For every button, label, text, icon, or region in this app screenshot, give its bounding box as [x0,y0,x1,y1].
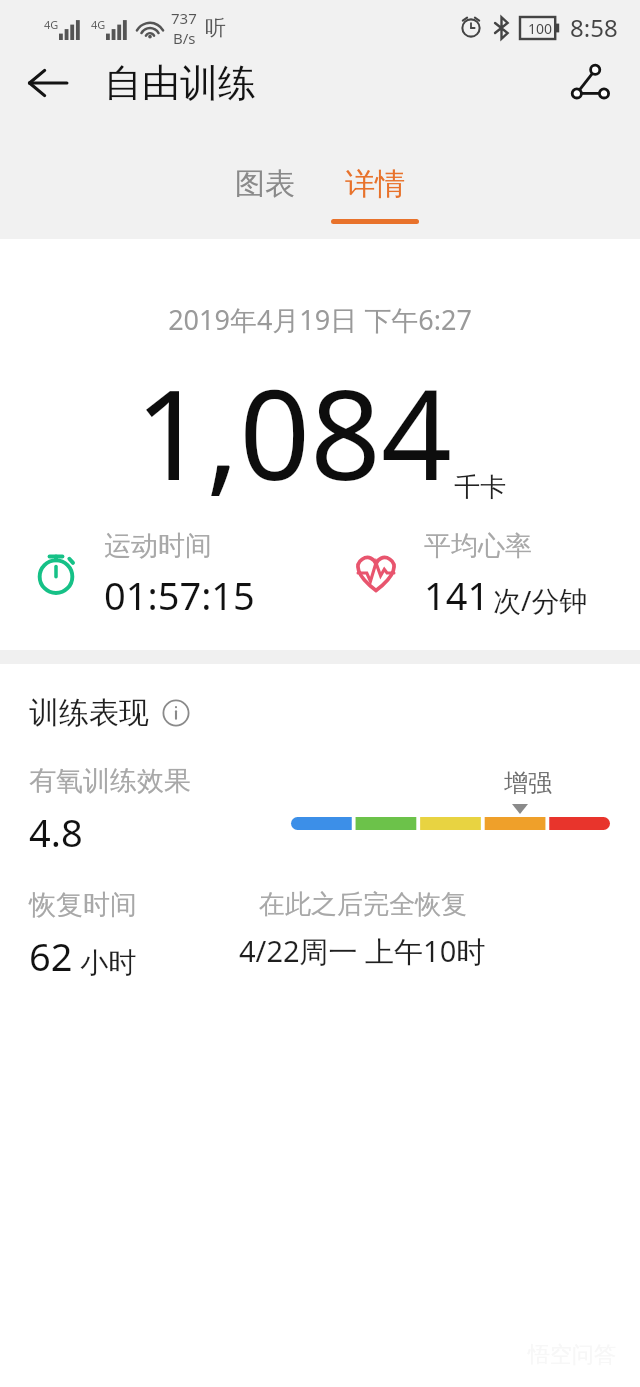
staticText: 737 [171,8,197,28]
staticText: 平均心率 [424,529,532,563]
staticText: 增强 [504,768,552,798]
staticText: 有氧训练效果 [29,764,191,798]
staticText: 01:57:15 [104,569,255,621]
staticText: 运动时间 [104,529,212,563]
button[interactable]: Back [18,55,78,110]
staticText: 4G [91,17,106,32]
button[interactable]: 图表 [210,165,320,203]
staticText: 次/分钟 [493,581,588,619]
other: Duration [30,547,82,599]
staticText: 小时 [73,942,137,980]
staticText: 恢复时间 [29,888,137,922]
staticText: 4G [44,17,59,32]
staticText: 训练表现 [29,694,149,732]
staticText: 4/22周一 上午10时 [239,931,486,971]
staticText: 千卡 [454,471,506,504]
staticText: 详情 [345,165,405,203]
button[interactable]: 训练表现 [29,694,197,732]
staticText: 图表 [235,165,295,203]
button[interactable]: Share [560,55,620,110]
staticText: 悟空问答 [528,1341,616,1369]
staticText: 听 [205,15,226,41]
staticText: 100 [528,19,553,38]
staticText: 141 [424,569,490,621]
staticText: B/s [173,28,196,48]
other: Average heart rate [350,547,402,599]
button[interactable]: 详情 [320,165,430,224]
staticText: 8:58 [570,11,618,44]
staticText: 1,084 [135,347,452,516]
staticText: 2019年4月19日 下午6:27 [0,301,640,338]
staticText: 62 [29,930,73,982]
staticText: 自由训练 [104,59,256,107]
staticText: 在此之后完全恢复 [259,888,467,921]
other: Info [161,698,191,728]
staticText: 4.8 [29,806,83,858]
